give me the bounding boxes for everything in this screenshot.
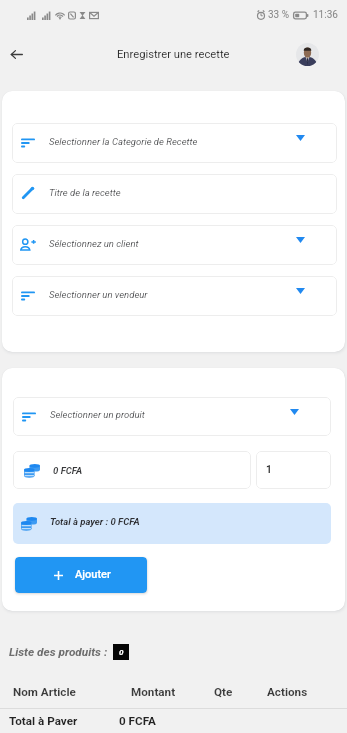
staticText: Total à Paver [9, 714, 78, 728]
button[interactable]: Total à payer : 0 FCFA [13, 503, 331, 544]
staticText: 0 [119, 648, 124, 657]
staticText: Actions [267, 685, 308, 699]
button[interactable]: Retour [0, 38, 32, 70]
staticText: 1 [266, 464, 272, 476]
staticText: Selectionner la Categorie de Recette [49, 136, 296, 147]
staticText: 0 FCFA [53, 465, 83, 476]
staticText: Nom Article [13, 685, 76, 699]
staticText: 0 FCFA [119, 714, 156, 728]
staticText: Selectionner un vendeur [49, 289, 296, 300]
button[interactable]: Ajouter [15, 557, 147, 593]
button[interactable]: Titre de la recette [12, 174, 337, 214]
staticText: 11:36 [313, 9, 338, 21]
button[interactable]: Selectionner un produit [13, 397, 331, 436]
button[interactable]: 1 [256, 451, 331, 489]
staticText: Liste des produits : [9, 645, 108, 659]
staticText: Montant [131, 685, 176, 699]
staticText: Total à payer : 0 FCFA [50, 516, 299, 527]
button[interactable]: Selectionner un vendeur [12, 276, 337, 316]
staticText: Selectionner un produit [50, 409, 290, 420]
staticText: Titre de la recette [49, 187, 305, 198]
staticText: Enregistrer une recette [117, 48, 230, 61]
staticText: Ajouter [75, 568, 111, 581]
staticText: Sélectionnez un client [49, 238, 296, 249]
staticText: Qte [214, 685, 233, 699]
button[interactable]: 0 FCFA [13, 451, 251, 489]
button[interactable]: Selectionner la Categorie de Recette [12, 123, 337, 163]
button[interactable]: Profil [296, 43, 319, 66]
staticText: 33 % [268, 9, 290, 21]
button[interactable]: Sélectionnez un client [12, 225, 337, 265]
